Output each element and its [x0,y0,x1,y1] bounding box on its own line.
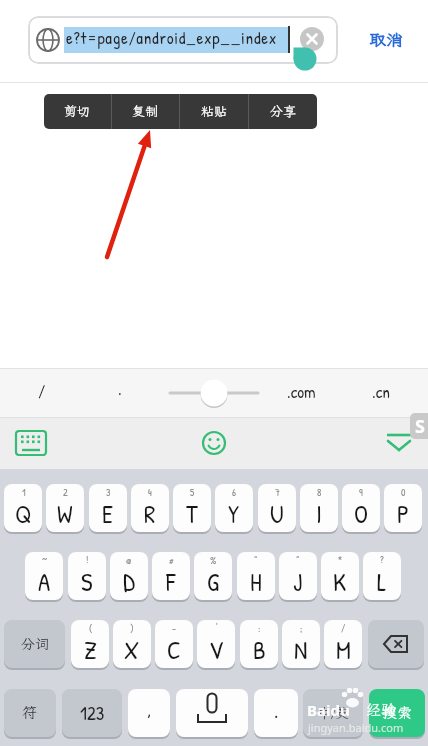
button[interactable]: 6 [215,484,253,532]
button[interactable]: @ [110,552,148,600]
button[interactable] [16,373,68,413]
staticText: .cn [372,380,390,403]
button[interactable] [8,423,54,463]
staticText: A [38,565,51,599]
staticText: 粘贴 [201,103,228,120]
button[interactable]: 取消 [362,26,410,52]
button[interactable] [96,373,148,413]
button[interactable] [362,373,406,413]
button[interactable]: ( [71,620,109,668]
button[interactable]: 符 [4,689,56,737]
staticText: W [57,497,73,531]
button[interactable]: 1 [4,484,42,532]
staticText: O [354,497,368,531]
staticText: e?t=page/android_exp__index [66,26,278,49]
staticText: 取消 [369,28,403,50]
button[interactable]: 3 [89,484,127,532]
button[interactable]: - [155,620,193,668]
button[interactable] [192,423,236,463]
staticText: L [377,565,387,599]
button[interactable]: , [128,689,170,737]
button[interactable]: ? [363,552,401,600]
button[interactable]: ' [197,620,235,668]
button[interactable]: 粘贴 [180,94,248,129]
button[interactable]: # [152,552,190,600]
staticText: J [293,565,303,599]
button[interactable]: . [254,689,298,737]
button[interactable]: 8 [300,484,338,532]
staticText: . [274,697,279,724]
staticText: @ [126,554,132,565]
button[interactable]: 4 [131,484,169,532]
staticText: S [415,414,425,439]
button[interactable]: 9 [342,484,380,532]
staticText: Baidu [307,700,350,720]
staticText: X [124,633,140,667]
button[interactable]: 分享 [249,94,317,129]
staticText: / [341,622,346,633]
button[interactable]: ” [279,552,317,600]
button[interactable] [378,423,420,463]
staticText: P [397,497,410,531]
button[interactable] [160,373,268,413]
button[interactable]: 123 [62,689,122,737]
staticText: ; [300,622,303,633]
staticText: 9 [359,486,363,497]
staticText: : [258,622,261,633]
staticText: C [167,633,181,667]
staticText: Q [15,497,32,531]
button[interactable] [278,373,334,413]
staticText: 中/英 [318,705,349,722]
staticText: 1 [22,486,26,497]
button[interactable]: / [324,620,362,668]
staticText: % [210,554,217,565]
staticText: F [166,565,176,599]
staticText: 5 [190,486,195,497]
staticText: , [147,695,152,722]
staticText: N [294,633,308,667]
button[interactable] [368,620,424,668]
staticText: 剪切 [64,103,91,120]
button[interactable]: ! [68,552,106,600]
button[interactable]: ~ [25,552,63,600]
button[interactable]: 2 [46,484,84,532]
button[interactable]: ; [282,620,320,668]
staticText: H [250,565,262,599]
staticText: R [144,497,156,531]
staticText: - [172,622,177,633]
button[interactable]: 分词 [4,620,65,668]
staticText: M [336,633,351,667]
staticText: U [270,497,284,531]
staticText: 搜索 [382,703,413,723]
button[interactable]: 5 [173,484,211,532]
button[interactable]: ) [113,620,151,668]
staticText: / [38,379,46,402]
button[interactable]: 剪切 [44,94,111,129]
staticText: 分词 [21,635,49,653]
button[interactable] [300,27,324,51]
button[interactable]: : [240,620,278,668]
staticText: V [209,633,224,667]
staticText: Y [228,497,240,531]
button[interactable]: 复制 [112,94,179,129]
staticText: K [333,565,347,599]
button[interactable]: * [321,552,359,600]
staticText: ) [130,622,134,633]
staticText: B [253,633,266,667]
button[interactable]: % [194,552,232,600]
button[interactable]: 搜索 [369,689,425,737]
staticText: “ [254,554,258,565]
button[interactable] [176,689,248,737]
staticText: # [169,554,174,565]
staticText: I [316,497,322,531]
button[interactable]: 0 [384,484,422,532]
button[interactable]: 中/英 [303,689,363,737]
staticText: 123 [80,700,105,726]
button[interactable]: 7 [258,484,296,532]
staticText: 4 [148,486,152,497]
staticText: .com [287,380,316,403]
staticText: jingyan.baidu.com [308,720,404,735]
staticText: ! [86,554,89,565]
staticText: T [186,497,198,531]
button[interactable]: “ [237,552,275,600]
